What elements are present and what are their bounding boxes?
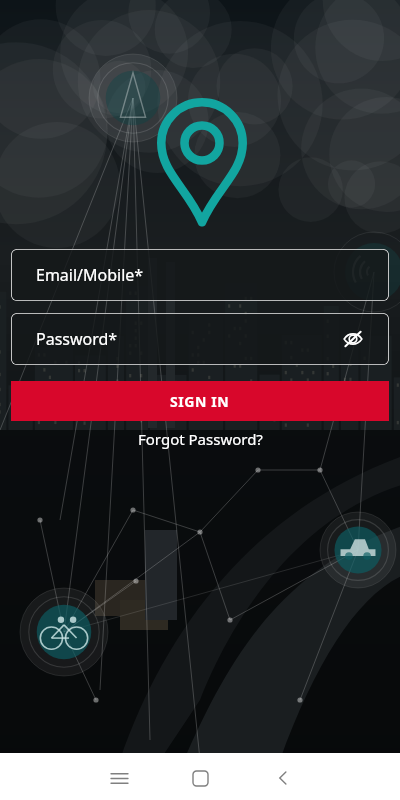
button[interactable]: Back	[267, 762, 299, 794]
staticText: Password*	[36, 328, 118, 350]
button[interactable]: Home	[184, 762, 216, 794]
button[interactable]: SIGN IN	[11, 381, 389, 421]
staticText: SIGN IN	[170, 392, 230, 411]
staticText: Email/Mobile*	[36, 264, 144, 286]
button[interactable]: Show password	[339, 325, 367, 353]
button[interactable]: Email/Mobile*	[11, 249, 389, 301]
staticText: Forgot Password?	[138, 429, 263, 449]
button[interactable]: Forgot Password?	[0, 421, 400, 457]
button[interactable]: Recent apps	[103, 762, 135, 794]
button[interactable]: Password*	[11, 313, 389, 365]
